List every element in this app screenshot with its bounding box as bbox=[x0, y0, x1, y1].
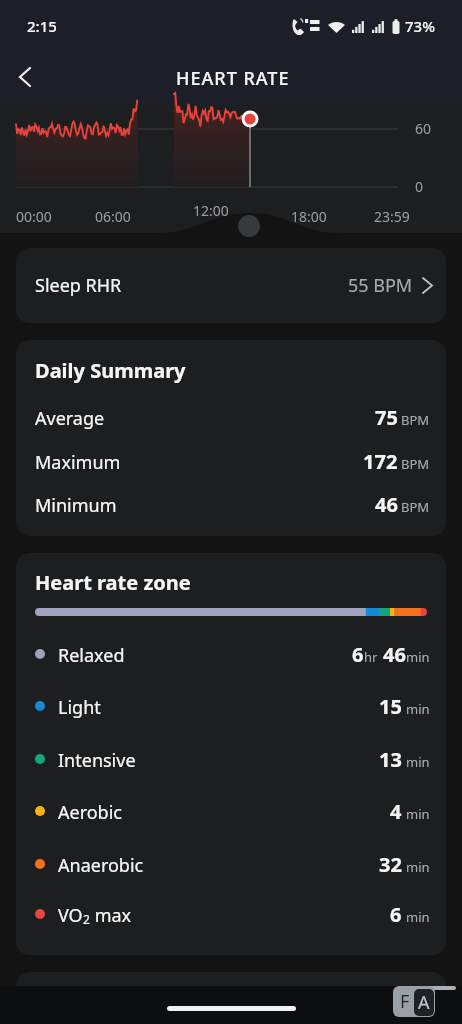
staticText: 23:59 bbox=[374, 207, 410, 226]
staticText: VO bbox=[58, 903, 83, 928]
staticText: min bbox=[406, 858, 430, 876]
staticText: 06:00 bbox=[95, 207, 131, 226]
staticText: Maximum bbox=[35, 450, 121, 475]
button[interactable]: Back bbox=[3, 57, 47, 101]
staticText: 2:15 bbox=[27, 16, 57, 36]
staticText: Sleep RHR bbox=[35, 273, 122, 298]
staticText: 60 bbox=[415, 119, 432, 138]
staticText: 15 bbox=[379, 693, 402, 720]
staticText: 6 bbox=[352, 641, 364, 668]
staticText: 6 bbox=[390, 901, 402, 928]
staticText: BPM bbox=[401, 411, 430, 429]
staticText: 13 bbox=[379, 746, 402, 773]
staticText: 46 bbox=[383, 641, 406, 668]
staticText: 73% bbox=[405, 16, 435, 36]
staticText: 55 BPM bbox=[348, 273, 413, 298]
staticText: Minimum bbox=[35, 493, 117, 518]
staticText: min bbox=[406, 753, 430, 771]
button[interactable]: Font size bbox=[393, 986, 435, 1017]
staticText: F bbox=[400, 989, 410, 1014]
staticText: min bbox=[406, 700, 430, 718]
staticText: 18:00 bbox=[291, 207, 327, 226]
staticText: 2 bbox=[83, 911, 90, 927]
staticText: 172 bbox=[363, 448, 398, 475]
staticText: 00:00 bbox=[16, 207, 52, 226]
staticText: max bbox=[90, 903, 132, 928]
staticText: 75 bbox=[375, 404, 398, 431]
staticText: Heart rate zone bbox=[35, 569, 191, 596]
staticText: min bbox=[406, 648, 430, 666]
staticText: HEART RATE bbox=[176, 66, 290, 91]
staticText: min bbox=[406, 805, 430, 823]
staticText: 12:00 bbox=[193, 201, 229, 220]
staticText: Daily Summary bbox=[35, 357, 186, 384]
staticText: Anaerobic bbox=[58, 853, 144, 878]
staticText: Light bbox=[58, 695, 101, 720]
staticText: 4 bbox=[390, 798, 402, 825]
staticText: min bbox=[406, 908, 430, 926]
staticText: Relaxed bbox=[58, 643, 125, 668]
staticText: 0 bbox=[415, 177, 424, 196]
staticText: A bbox=[418, 990, 430, 1015]
staticText: hr bbox=[364, 648, 378, 666]
staticText: 46 bbox=[375, 491, 398, 518]
staticText: BPM bbox=[401, 498, 430, 516]
staticText: Intensive bbox=[58, 748, 136, 773]
button[interactable]: Sleep RHR bbox=[16, 248, 446, 323]
staticText: Average bbox=[35, 406, 105, 431]
staticText: 32 bbox=[379, 851, 402, 878]
staticText: BPM bbox=[401, 455, 430, 473]
staticText: Aerobic bbox=[58, 800, 122, 825]
